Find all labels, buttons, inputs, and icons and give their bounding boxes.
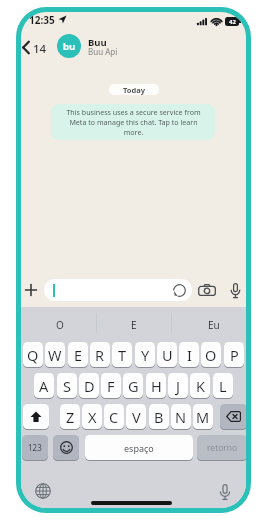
button[interactable]: Z xyxy=(60,404,80,429)
staticText: Buu Api xyxy=(88,46,118,57)
staticText: E xyxy=(74,345,83,365)
staticText: L xyxy=(219,376,227,396)
button[interactable]: K xyxy=(190,373,210,398)
button[interactable]: espaço xyxy=(85,435,193,460)
staticText: 123 xyxy=(28,442,42,453)
button[interactable] xyxy=(22,41,30,54)
staticText: 42 xyxy=(229,18,236,26)
staticText: G xyxy=(128,376,139,396)
button[interactable]: This business uses a secure service from… xyxy=(51,104,215,140)
staticText: Eu xyxy=(208,318,220,332)
button[interactable] xyxy=(219,484,231,501)
button[interactable]: D xyxy=(79,373,99,398)
staticText: R xyxy=(95,345,105,365)
staticText: 12:35 xyxy=(29,13,55,27)
staticText: N xyxy=(175,407,187,427)
staticText: D xyxy=(84,376,95,396)
button[interactable] xyxy=(230,283,241,299)
staticText: Today xyxy=(123,85,146,95)
button[interactable]: O xyxy=(201,342,221,367)
button[interactable]: bu xyxy=(57,34,81,58)
staticText: espaço xyxy=(124,442,154,454)
button[interactable]: E xyxy=(68,342,88,367)
staticText: O xyxy=(205,345,217,365)
staticText: O xyxy=(56,318,64,332)
button[interactable]: retorno xyxy=(197,435,246,460)
staticText: retorno xyxy=(207,442,238,454)
button[interactable]: S xyxy=(57,373,77,398)
staticText: Buu xyxy=(88,36,107,49)
button[interactable]: T xyxy=(112,342,132,367)
staticText: F xyxy=(107,376,115,396)
staticText: J xyxy=(176,376,180,396)
button[interactable] xyxy=(35,483,51,499)
staticText: T xyxy=(118,345,127,365)
staticText: B xyxy=(154,407,164,427)
staticText: 14 xyxy=(33,41,47,57)
staticText: X xyxy=(88,407,97,427)
staticText: bu xyxy=(63,40,76,53)
staticText: C xyxy=(109,407,119,427)
button[interactable]: E xyxy=(96,309,171,340)
button[interactable]: W xyxy=(45,342,65,367)
button[interactable]: A xyxy=(34,373,54,398)
staticText: P xyxy=(230,345,239,365)
button[interactable]: N xyxy=(171,404,191,429)
button[interactable]: I xyxy=(179,342,199,367)
button[interactable]: J xyxy=(168,373,188,398)
staticText: Z xyxy=(66,407,75,427)
button[interactable] xyxy=(44,279,192,301)
button[interactable]: U xyxy=(157,342,177,367)
staticText: W xyxy=(48,345,62,365)
staticText: A xyxy=(39,376,49,396)
button[interactable]: P xyxy=(224,342,244,367)
button[interactable] xyxy=(23,404,49,429)
button[interactable]: V xyxy=(126,404,146,429)
button[interactable]: R xyxy=(90,342,110,367)
button[interactable]: L xyxy=(213,373,233,398)
button[interactable] xyxy=(25,284,37,296)
staticText: V xyxy=(132,407,141,427)
button[interactable] xyxy=(53,435,79,460)
button[interactable]: G xyxy=(123,373,143,398)
button[interactable]: B xyxy=(149,404,169,429)
button[interactable]: F xyxy=(101,373,121,398)
staticText: I xyxy=(187,345,192,365)
button[interactable]: Eu xyxy=(176,309,246,340)
staticText: Q xyxy=(27,345,39,365)
staticText: H xyxy=(151,376,162,396)
staticText: E xyxy=(131,318,137,332)
button[interactable]: 123 xyxy=(22,435,48,460)
button[interactable]: Q xyxy=(23,342,43,367)
button[interactable]: M xyxy=(193,404,213,429)
staticText: U xyxy=(162,345,173,365)
staticText: S xyxy=(63,376,71,396)
button[interactable]: H xyxy=(146,373,166,398)
button[interactable]: C xyxy=(104,404,124,429)
staticText: This business uses a secure service from… xyxy=(66,107,201,137)
button[interactable]: Y xyxy=(135,342,155,367)
staticText: Y xyxy=(141,345,150,365)
button[interactable]: X xyxy=(82,404,102,429)
button[interactable] xyxy=(198,284,216,296)
staticText: M xyxy=(196,407,210,427)
button[interactable] xyxy=(220,404,246,429)
button[interactable]: O xyxy=(21,309,98,340)
staticText: K xyxy=(196,376,205,396)
